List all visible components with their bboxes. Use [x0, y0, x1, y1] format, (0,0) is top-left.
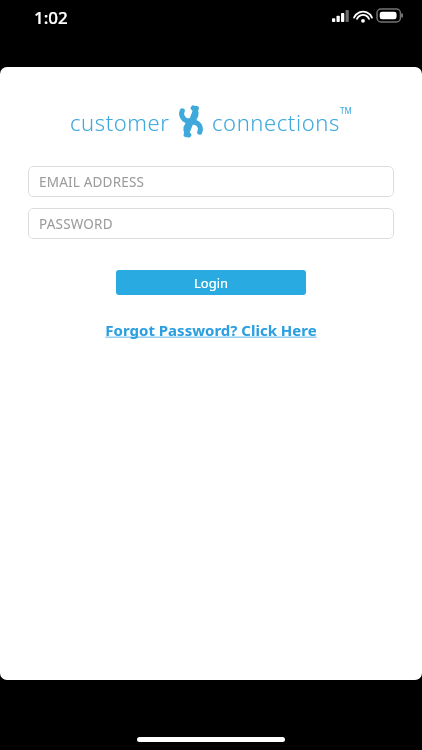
- staticText: customer: [70, 107, 170, 137]
- staticText: 1:02: [34, 6, 68, 29]
- staticText: PASSWORD: [39, 215, 113, 233]
- staticText: EMAIL ADDRESS: [39, 173, 145, 191]
- button[interactable]: Login: [116, 270, 306, 295]
- button[interactable]: PASSWORD: [28, 208, 394, 239]
- button[interactable]: EMAIL ADDRESS: [28, 166, 394, 197]
- button[interactable]: Forgot Password? Click Here: [99, 318, 323, 342]
- staticText: Forgot Password? Click Here: [105, 320, 317, 340]
- staticText: Login: [194, 274, 229, 292]
- staticText: connections: [212, 107, 340, 137]
- other: Home: [137, 737, 285, 742]
- staticText: TM: [340, 105, 352, 116]
